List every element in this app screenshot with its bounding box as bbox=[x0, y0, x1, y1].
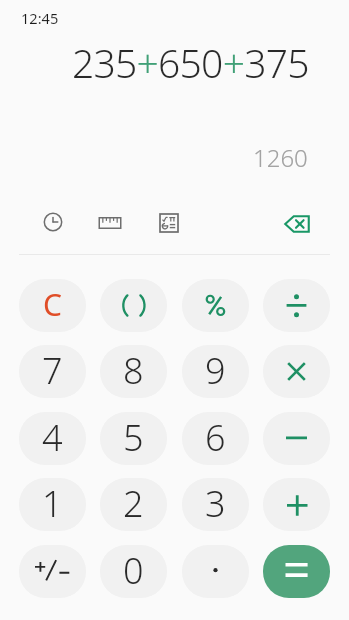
button[interactable]: Unit converter bbox=[92, 205, 128, 241]
button[interactable]: Decimal point bbox=[182, 545, 249, 598]
button[interactable]: 4 bbox=[19, 412, 86, 465]
button[interactable]: Divide bbox=[263, 279, 330, 332]
button[interactable]: History bbox=[35, 204, 71, 240]
staticText: 1 bbox=[42, 479, 63, 528]
button[interactable]: 2 bbox=[100, 478, 167, 531]
staticText: 2 bbox=[123, 479, 144, 528]
staticText: 0 bbox=[123, 546, 144, 595]
button[interactable]: C bbox=[19, 279, 86, 332]
button[interactable]: Add bbox=[263, 478, 330, 531]
button[interactable]: 8 bbox=[100, 345, 167, 398]
button[interactable]: Scientific calculator bbox=[151, 205, 187, 241]
button[interactable]: 1 bbox=[19, 478, 86, 531]
button[interactable]: Plus minus bbox=[19, 545, 86, 598]
button[interactable]: 6 bbox=[182, 412, 249, 465]
button[interactable]: 5 bbox=[100, 412, 167, 465]
staticText: 9 bbox=[205, 346, 226, 395]
staticText: 5 bbox=[123, 413, 144, 462]
button[interactable]: Subtract bbox=[263, 412, 330, 465]
staticText: 1260 bbox=[253, 141, 308, 173]
button[interactable]: Parentheses bbox=[100, 279, 167, 332]
button[interactable]: 3 bbox=[182, 478, 249, 531]
staticText: 235+650+375 bbox=[72, 36, 309, 82]
staticText: 7 bbox=[42, 346, 63, 395]
staticText: 4 bbox=[42, 413, 63, 462]
button[interactable]: 0 bbox=[100, 545, 167, 598]
staticText: 12:45 bbox=[21, 8, 59, 28]
staticText: 8 bbox=[123, 346, 144, 395]
button[interactable]: Backspace bbox=[277, 204, 317, 244]
button[interactable]: Equals bbox=[263, 545, 330, 598]
button[interactable]: Percent bbox=[182, 279, 249, 332]
button[interactable]: 9 bbox=[182, 345, 249, 398]
staticText: C bbox=[43, 284, 62, 325]
staticText: 3 bbox=[205, 479, 226, 528]
staticText: 6 bbox=[205, 413, 226, 462]
button[interactable]: Multiply bbox=[263, 345, 330, 398]
button[interactable]: 7 bbox=[19, 345, 86, 398]
